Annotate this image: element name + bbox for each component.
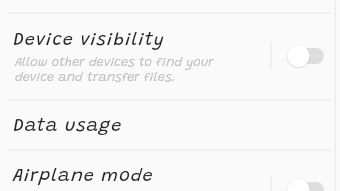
button[interactable]: Toggle (270, 176, 324, 191)
staticText: Device visibility (13, 32, 165, 50)
button[interactable]: Device visibility (0, 14, 340, 99)
button[interactable]: Data usage (0, 101, 340, 149)
staticText: Airplane mode (13, 168, 154, 186)
staticText: Allow other devices to find your device … (15, 57, 214, 85)
button[interactable]: Airplane mode (0, 151, 340, 191)
staticText: Data usage (13, 118, 123, 136)
button[interactable]: Toggle (270, 42, 324, 69)
